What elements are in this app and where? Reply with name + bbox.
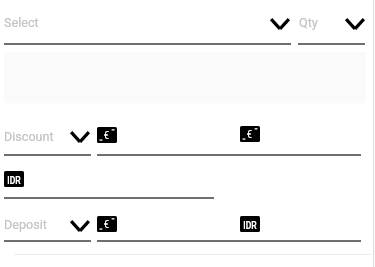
staticText: IDR xyxy=(243,220,257,232)
staticText: € xyxy=(104,217,109,230)
button[interactable]: Discount amount in euro xyxy=(97,127,117,143)
staticText: Select xyxy=(4,15,39,30)
staticText: € xyxy=(247,127,252,140)
staticText: IDR xyxy=(7,175,21,187)
button[interactable]: Deposit amount in euro xyxy=(97,216,117,232)
button[interactable]: Amount in rupiah xyxy=(240,216,260,232)
button[interactable]: Amount in rupiah xyxy=(4,171,24,187)
staticText: € xyxy=(104,128,109,141)
staticText: Qty xyxy=(299,15,318,30)
staticText: Deposit xyxy=(4,217,47,232)
button[interactable]: Deposit type dropdown xyxy=(65,214,95,238)
staticText: Discount xyxy=(4,129,54,144)
button[interactable]: Qty dropdown xyxy=(340,12,370,36)
button[interactable]: Amount in euro xyxy=(240,126,260,142)
button[interactable]: Select dropdown xyxy=(265,12,295,36)
button[interactable]: Discount type dropdown xyxy=(65,125,95,149)
